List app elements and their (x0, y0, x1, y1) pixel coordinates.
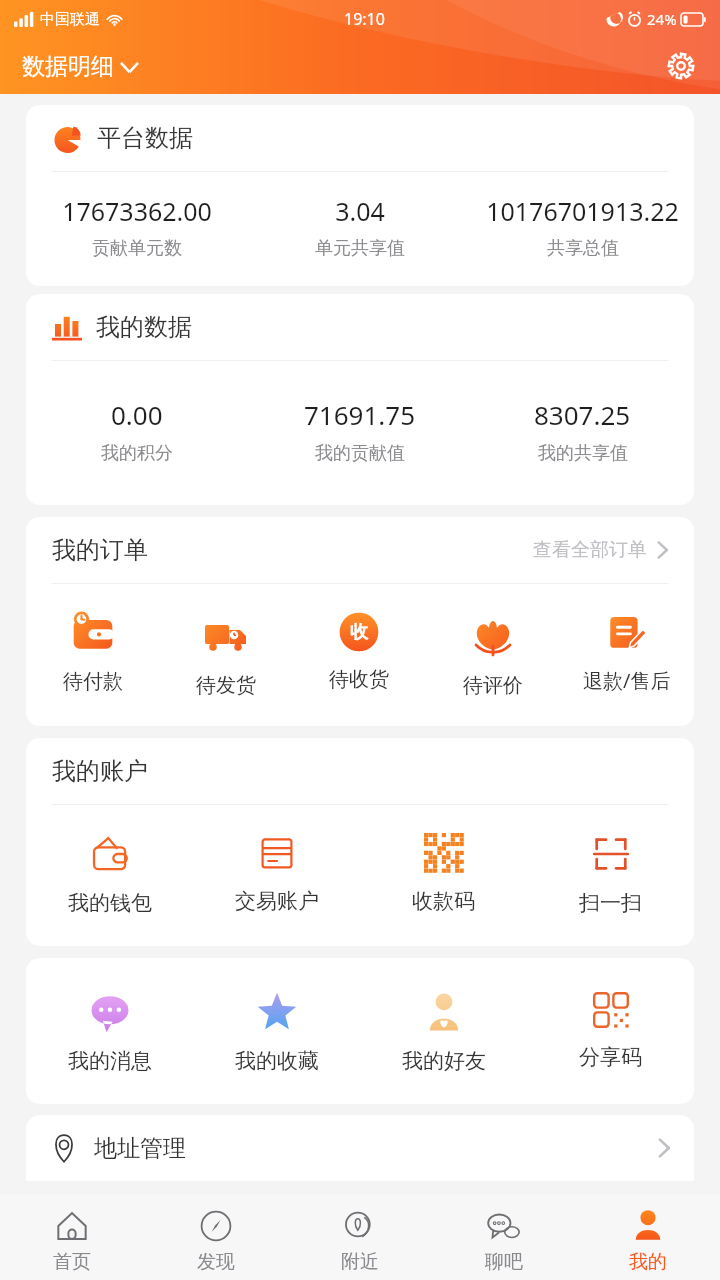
staticText: 待付款 (63, 669, 123, 694)
button[interactable]: 退款/售后 (560, 606, 694, 698)
staticText: 我的钱包 (68, 890, 152, 916)
staticText: 扫一扫 (579, 890, 642, 916)
staticText: 数据明细 (22, 52, 114, 81)
staticText: 24% (647, 9, 677, 29)
staticText: 交易账户 (235, 888, 319, 914)
button[interactable]: 我的消息 (26, 986, 193, 1078)
button[interactable]: 我的钱包 (26, 829, 193, 920)
button[interactable]: 发现 (144, 1194, 288, 1280)
staticText: 待发货 (196, 673, 256, 698)
button[interactable]: 分享码 (527, 986, 694, 1074)
staticText: 71691.75 (304, 397, 416, 432)
staticText: 我的积分 (101, 442, 173, 465)
button[interactable]: 扫一扫 (527, 829, 694, 920)
button[interactable]: 地址管理 (26, 1115, 694, 1181)
button[interactable]: 聊吧 (432, 1194, 576, 1280)
button[interactable]: 收款码 (360, 829, 527, 918)
staticText: 3.04 (335, 194, 385, 228)
staticText: 单元共享值 (315, 237, 405, 260)
staticText: 17673362.00 (62, 194, 212, 228)
staticText: 我的 (629, 1250, 667, 1274)
staticText: 聊吧 (485, 1250, 523, 1274)
button[interactable]: 交易账户 (193, 829, 360, 918)
staticText: 分享码 (579, 1044, 642, 1070)
staticText: 首页 (53, 1250, 91, 1274)
staticText: 待评价 (463, 673, 523, 698)
staticText: 我的共享值 (538, 442, 628, 465)
staticText: 19:10 (344, 8, 385, 30)
staticText: 地址管理 (94, 1134, 186, 1163)
button[interactable]: Settings (660, 45, 702, 87)
staticText: 我的好友 (402, 1048, 486, 1074)
button[interactable]: 我的收藏 (193, 986, 360, 1078)
staticText: 收 (350, 621, 368, 644)
button[interactable]: 待付款 (26, 606, 159, 698)
staticText: 收款码 (412, 888, 475, 914)
staticText: 查看全部订单 (533, 538, 647, 562)
staticText: 我的数据 (96, 312, 192, 342)
staticText: 我的消息 (68, 1048, 152, 1074)
button[interactable]: 数据明细 (20, 46, 140, 87)
button[interactable]: 我的好友 (360, 986, 527, 1078)
staticText: 0.00 (111, 397, 163, 432)
staticText: 退款/售后 (583, 667, 671, 694)
staticText: 我的贡献值 (315, 442, 405, 465)
staticText: 我的账户 (52, 756, 148, 786)
staticText: 我的收藏 (235, 1048, 319, 1074)
button[interactable]: 待评价 (426, 606, 560, 702)
staticText: 贡献单元数 (92, 237, 182, 260)
button[interactable]: 首页 (0, 1194, 144, 1280)
staticText: 平台数据 (97, 123, 193, 153)
button[interactable]: 附近 (288, 1194, 432, 1280)
staticText: 10176701913.22 (486, 194, 679, 228)
button[interactable]: 收 (292, 606, 426, 696)
staticText: 中国联通 (40, 10, 100, 29)
button[interactable]: 查看全部订单 (529, 534, 672, 566)
staticText: 待收货 (329, 667, 389, 692)
staticText: 发现 (197, 1250, 235, 1274)
staticText: 我的订单 (52, 535, 148, 565)
staticText: 8307.25 (534, 397, 631, 432)
staticText: 附近 (341, 1250, 379, 1274)
button[interactable]: 我的 (576, 1194, 720, 1280)
staticText: 共享总值 (547, 237, 619, 260)
button[interactable]: 待发货 (159, 606, 292, 702)
